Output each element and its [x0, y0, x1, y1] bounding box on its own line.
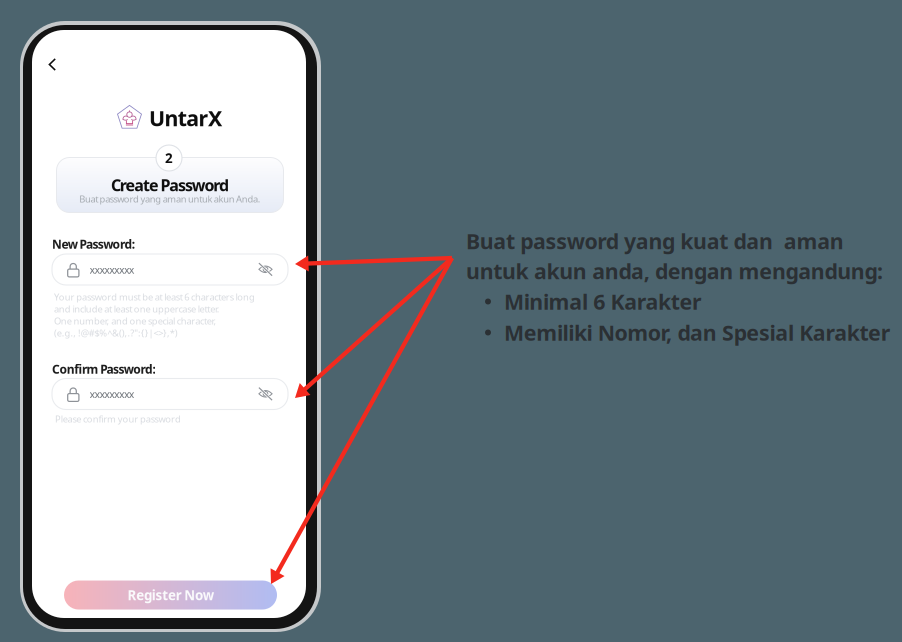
staticText: (e.g., !@#$%^&(),.?":{}|<>},*) [54, 327, 178, 339]
staticText: Minimal 6 Karakter [504, 287, 702, 316]
staticText: xxxxxxxxx [90, 387, 135, 401]
staticText: One number, and one special character, [54, 315, 216, 327]
staticText: Buat password yang aman untuk akun Anda. [79, 193, 261, 205]
staticText: Register Now [127, 586, 214, 604]
staticText: untuk akun anda, dengan mengandung: [466, 257, 883, 285]
staticText: Your password must be at least 6 charact… [54, 291, 255, 303]
staticText: Please confirm your password [55, 413, 181, 425]
button[interactable]: xxxxxxxxx [52, 254, 288, 285]
staticText: Buat password yang kuat dan aman [466, 227, 844, 255]
button[interactable]: Register Now [64, 580, 277, 609]
staticText: Create Password [111, 174, 229, 196]
staticText: and include at least one uppercase lette… [54, 303, 220, 315]
staticText: UntarX [149, 104, 222, 132]
staticText: 2 [165, 149, 173, 167]
button[interactable]: xxxxxxxxx [52, 378, 288, 409]
button[interactable]: Back [37, 49, 67, 79]
staticText: New Password: [52, 236, 135, 252]
staticText: Memiliki Nomor, dan Spesial Karakter [504, 318, 891, 347]
staticText: Confirm Password: [52, 361, 155, 377]
staticText: xxxxxxxxx [90, 262, 135, 277]
